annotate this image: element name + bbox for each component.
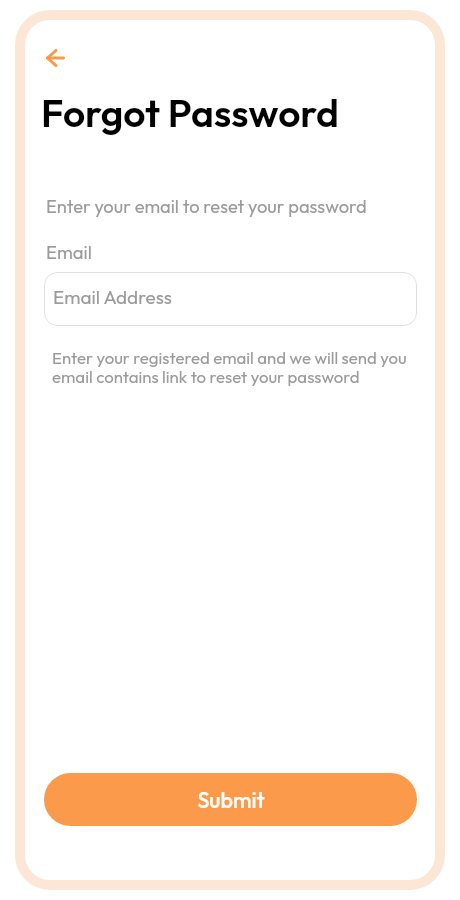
button[interactable]: Submit xyxy=(44,773,417,826)
button[interactable]: Back xyxy=(34,37,76,79)
staticText: Forgot Password xyxy=(41,88,339,137)
staticText: Email Address xyxy=(53,285,172,309)
staticText: Enter your email to reset your password xyxy=(46,195,367,218)
staticText: Submit xyxy=(197,786,265,813)
staticText: Enter your registered email and we will … xyxy=(52,347,407,388)
button[interactable]: Email Address xyxy=(44,272,417,326)
staticText: Email xyxy=(46,240,92,263)
